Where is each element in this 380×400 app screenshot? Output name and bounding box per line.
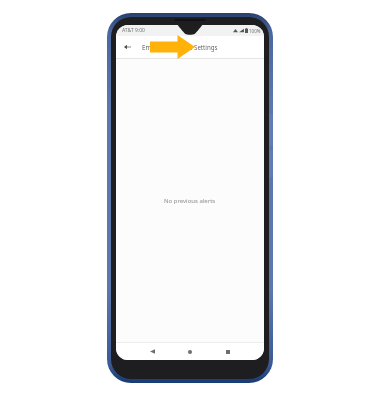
- button[interactable]: Home: [180, 343, 200, 360]
- staticText: AT&T 9:00: [122, 27, 145, 34]
- button[interactable]: Back: [142, 343, 162, 360]
- button[interactable]: Back: [116, 36, 138, 58]
- button[interactable]: Recent apps: [218, 343, 238, 360]
- staticText: 100%: [249, 28, 261, 34]
- staticText: No previous alerts: [164, 197, 216, 205]
- staticText: Emergency alerts Settings: [142, 43, 218, 51]
